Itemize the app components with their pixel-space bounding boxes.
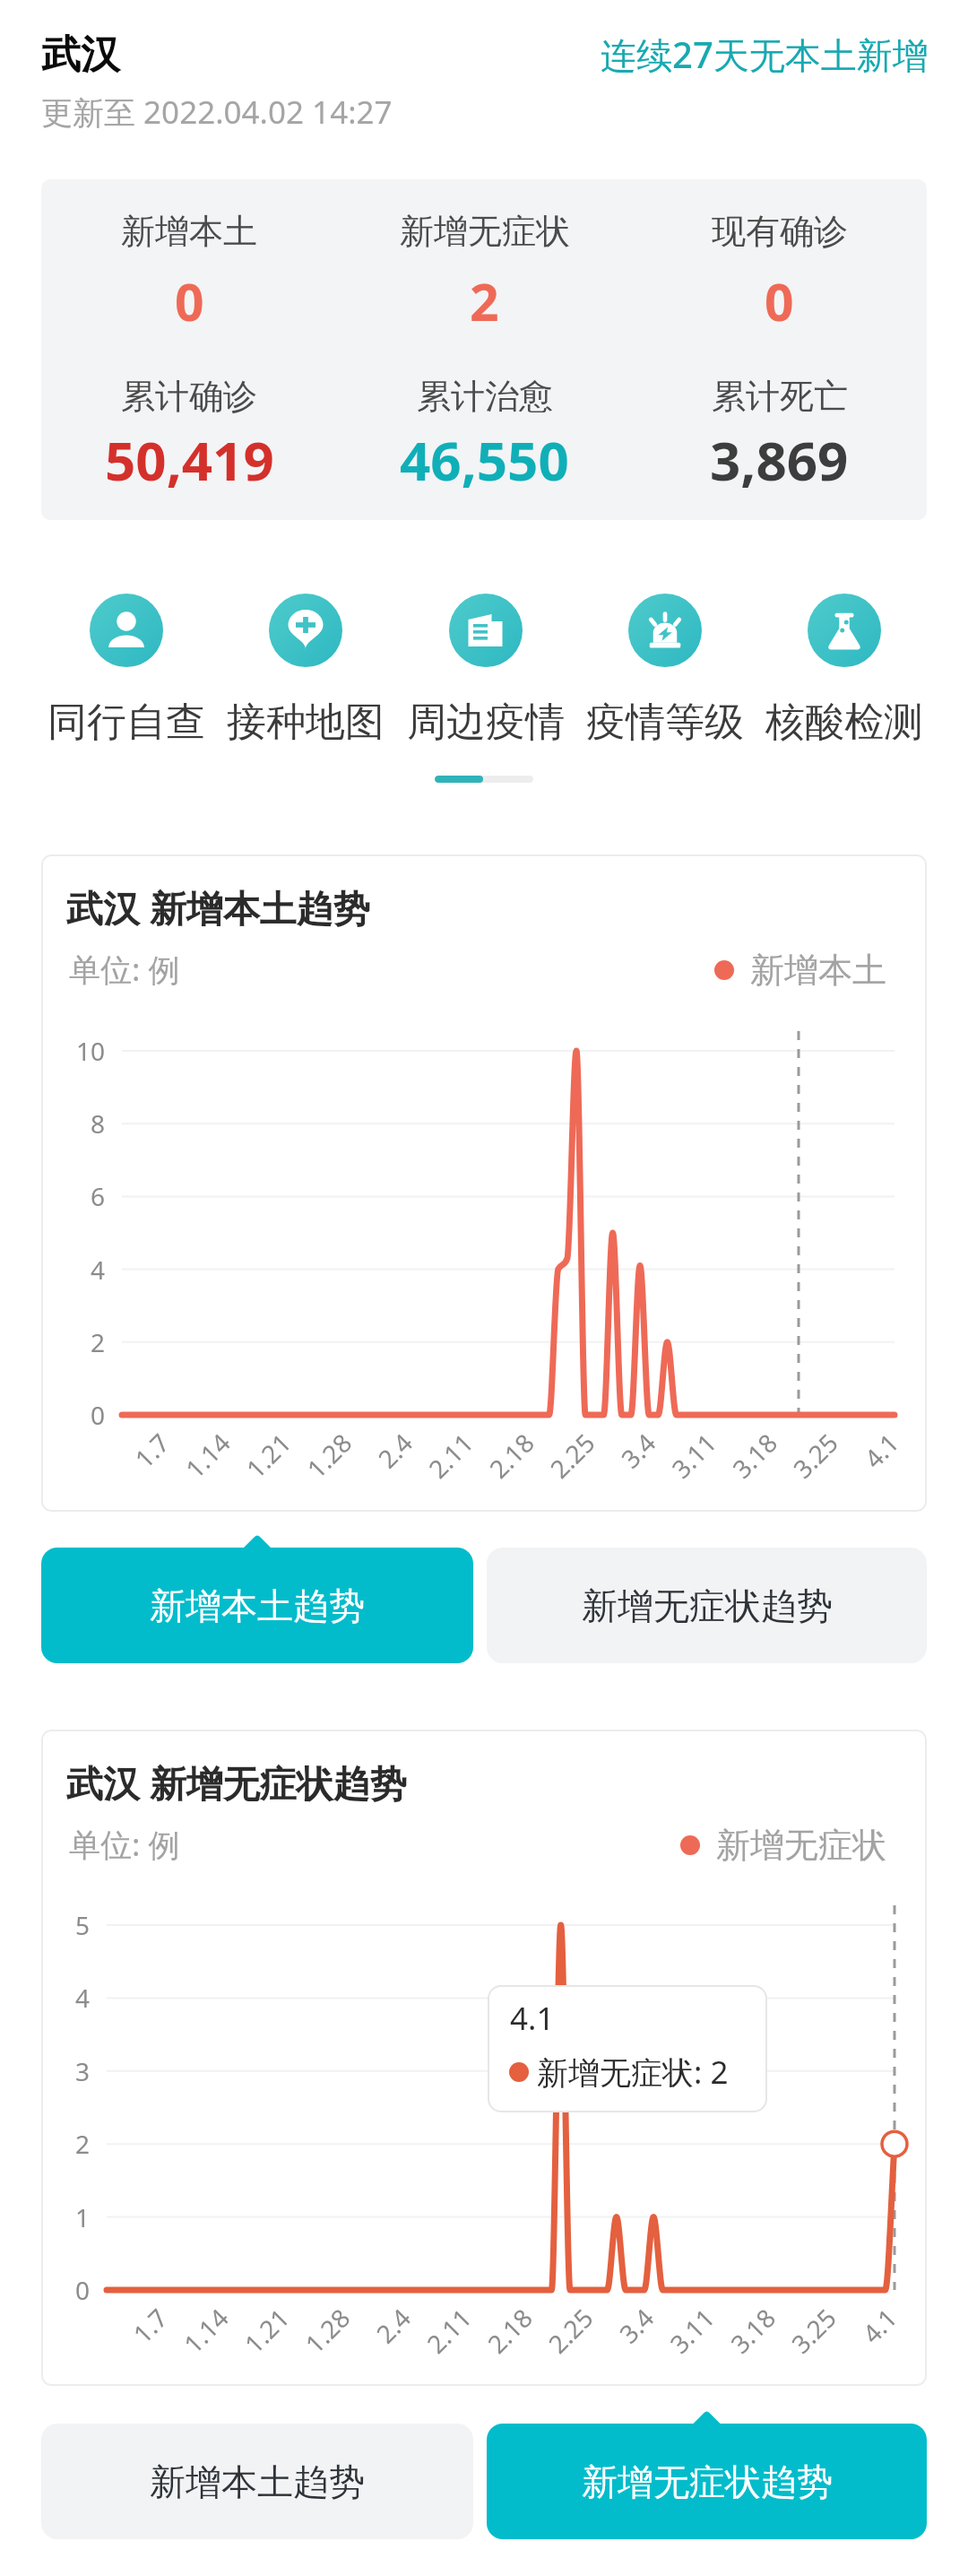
staticText: 疫情等级	[586, 698, 744, 747]
staticText: 新增本土趋势	[150, 1583, 365, 1628]
staticText: 连续27天无本土新增	[601, 30, 929, 79]
staticText: 累计治愈	[417, 375, 553, 418]
staticText: 累计确诊	[121, 375, 257, 418]
button[interactable]: 新增本土趋势	[41, 2424, 473, 2539]
staticText: 周边疫情	[407, 698, 565, 747]
staticText: 武汉 新增无症状趋势	[66, 1757, 407, 1808]
staticText: 新增本土	[750, 949, 886, 992]
button[interactable]: 新增无症状趋势	[487, 2424, 927, 2539]
staticText: 单位: 例	[69, 1823, 180, 1866]
staticText: 0	[175, 266, 204, 336]
staticText: 2	[470, 266, 499, 336]
button[interactable]: 疫情等级	[575, 594, 755, 747]
staticText: 新增无症状趋势	[582, 2459, 833, 2504]
staticText: 新增无症状	[716, 1824, 886, 1867]
staticText: 3,869	[710, 423, 849, 497]
staticText: 新增本土趋势	[150, 2459, 365, 2504]
staticText: 新增无症状趋势	[582, 1583, 833, 1628]
button[interactable]: 周边疫情	[396, 594, 575, 747]
button[interactable]: 新增无症状趋势	[487, 1548, 927, 1663]
button[interactable]: 同行自查	[37, 594, 216, 747]
button[interactable]: 新增本土趋势	[41, 1548, 473, 1663]
staticText: 累计死亡	[712, 375, 848, 418]
button[interactable]: 接种地图	[216, 594, 395, 747]
button[interactable]: 核酸检测	[755, 594, 934, 747]
staticText: 武汉 新增本土趋势	[66, 882, 370, 932]
staticText: 更新至 2022.04.02 14:27	[41, 91, 393, 134]
staticText: 50,419	[105, 423, 274, 497]
staticText: 现有确诊	[712, 210, 848, 253]
staticText: 同行自查	[48, 698, 205, 747]
staticText: 0	[765, 266, 794, 336]
staticText: 武汉	[41, 30, 120, 80]
staticText: 核酸检测	[765, 698, 923, 747]
staticText: 接种地图	[227, 698, 385, 747]
staticText: 46,550	[400, 423, 569, 497]
staticText: 单位: 例	[69, 948, 180, 991]
staticText: 新增本土	[121, 210, 257, 253]
staticText: 新增无症状	[400, 210, 570, 253]
